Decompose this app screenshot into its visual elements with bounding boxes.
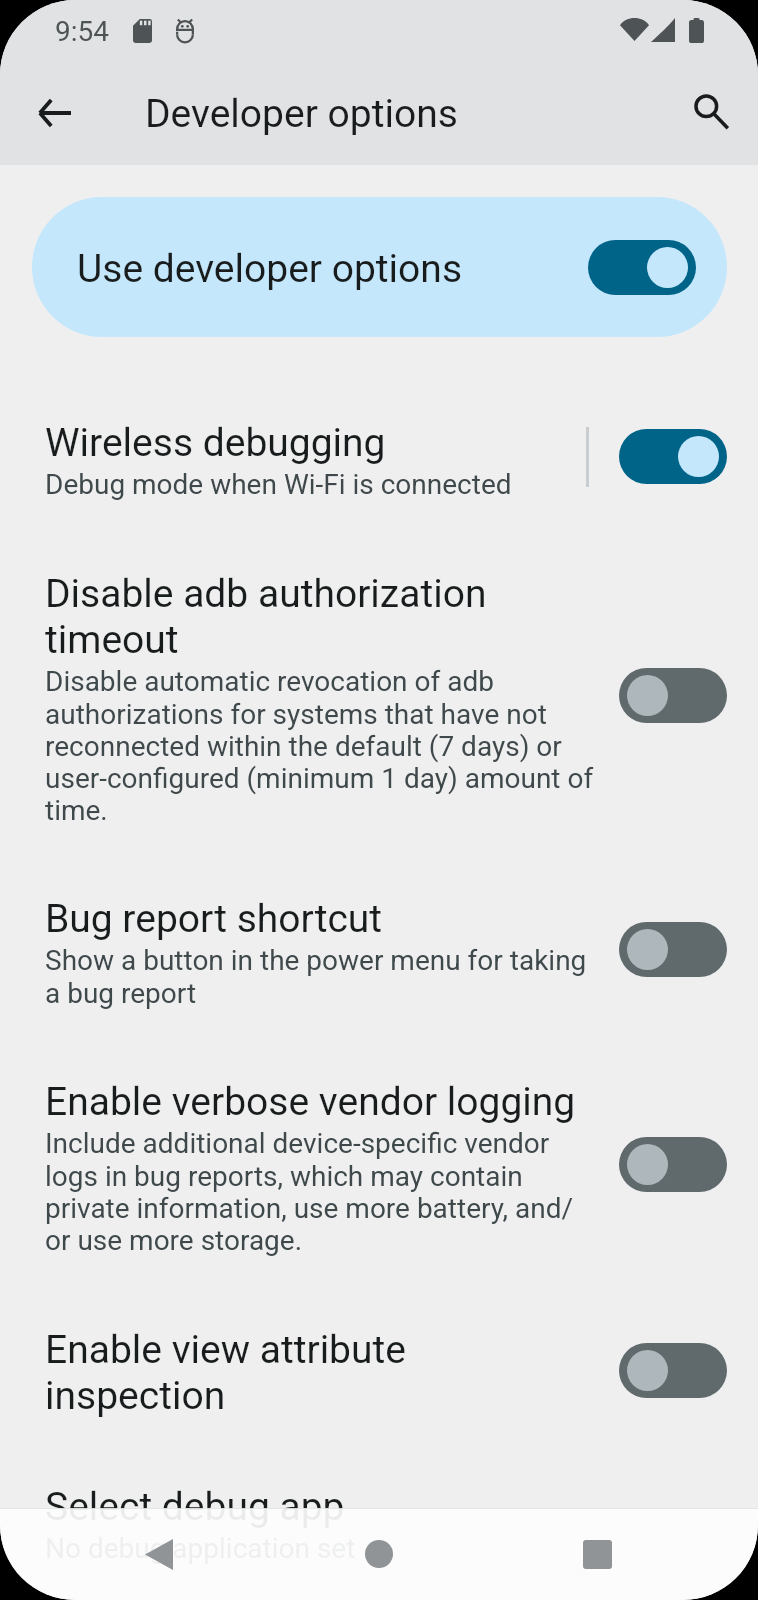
staticText: Disable adb authorization timeout xyxy=(45,571,595,663)
button[interactable]: Use developer options xyxy=(32,197,727,337)
staticText: Enable verbose vendor logging xyxy=(45,1079,576,1125)
button[interactable] xyxy=(619,922,727,977)
button[interactable]: Enable view attribute inspection xyxy=(0,1327,758,1419)
button[interactable]: Disable adb authorization timeout xyxy=(0,571,758,825)
staticText: Enable view attribute inspection xyxy=(45,1327,595,1419)
staticText: Debug mode when Wi-Fi is connected xyxy=(45,468,512,501)
button[interactable] xyxy=(619,668,727,723)
button[interactable]: Search xyxy=(683,84,737,138)
staticText: No debug application set xyxy=(45,1532,356,1565)
button[interactable]: Select debug app xyxy=(0,1484,758,1563)
staticText: Use developer options xyxy=(77,246,463,292)
staticText: Bug report shortcut xyxy=(45,896,383,942)
button[interactable] xyxy=(619,1137,727,1192)
button[interactable]: Navigate up xyxy=(27,86,81,140)
staticText: Include additional device-specific vendo… xyxy=(45,1127,595,1257)
button[interactable] xyxy=(619,429,727,484)
staticText: Developer options xyxy=(145,91,458,137)
button[interactable]: Bug report shortcut xyxy=(0,896,758,1008)
staticText: Select debug app xyxy=(45,1484,345,1530)
staticText: 9:54 xyxy=(55,15,109,48)
button[interactable]: Enable verbose vendor logging xyxy=(0,1079,758,1255)
button[interactable]: Home xyxy=(339,1514,419,1594)
button[interactable]: Back xyxy=(119,1514,199,1594)
staticText: Disable automatic revocation of adb auth… xyxy=(45,665,595,827)
staticText: Show a button in the power menu for taki… xyxy=(45,944,595,1010)
button[interactable] xyxy=(588,240,696,295)
button[interactable]: Wireless debugging xyxy=(0,420,758,499)
button[interactable] xyxy=(619,1343,727,1398)
staticText: Wireless debugging xyxy=(45,420,386,466)
button[interactable]: Recent apps xyxy=(557,1514,637,1594)
